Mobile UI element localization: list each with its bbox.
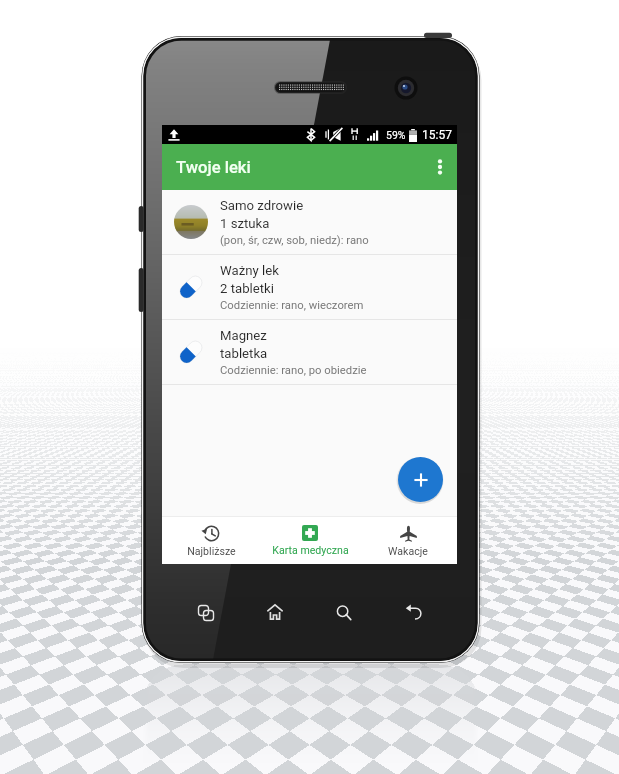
staticText: Samo zdrowie <box>220 198 304 213</box>
staticText: (pon, śr, czw, sob, niedz): rano <box>220 234 369 247</box>
staticText: Najbliższe <box>187 545 236 557</box>
staticText: Twoje leki <box>176 158 251 177</box>
button[interactable]: Karta medyczna <box>261 517 359 564</box>
staticText: Magnez <box>220 328 267 343</box>
button[interactable]: Search <box>327 598 361 628</box>
staticText: Karta medyczna <box>272 544 349 556</box>
staticText: tabletka <box>220 346 268 361</box>
staticText: Ważny lek <box>220 263 279 278</box>
button[interactable]: Recent apps <box>189 598 223 628</box>
button[interactable]: Add <box>398 457 443 502</box>
staticText: 1 sztuka <box>220 216 270 231</box>
button[interactable]: Home <box>258 598 292 628</box>
staticText: 2 tabletki <box>220 281 274 296</box>
button[interactable]: Back <box>397 598 431 628</box>
staticText: Codziennie: rano, po obiedzie <box>220 364 367 377</box>
button[interactable]: Magnez <box>162 320 457 385</box>
button[interactable]: Najbliższe <box>162 517 261 564</box>
button[interactable]: Wakacje <box>359 517 457 564</box>
staticText: Codziennie: rano, wieczorem <box>220 299 364 312</box>
staticText: Wakacje <box>388 545 428 557</box>
button[interactable]: Samo zdrowie <box>162 190 457 255</box>
staticText: 15:57 <box>422 128 452 142</box>
button[interactable]: Ważny lek <box>162 255 457 320</box>
button[interactable]: More options <box>423 150 457 184</box>
staticText: 59% <box>386 129 406 141</box>
